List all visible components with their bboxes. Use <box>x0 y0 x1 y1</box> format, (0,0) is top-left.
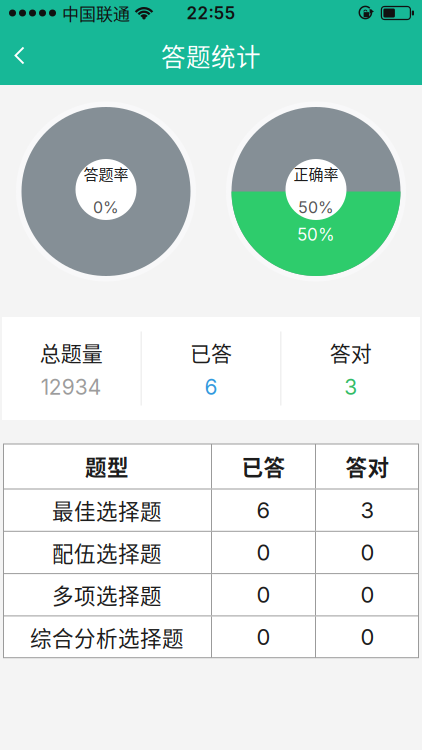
staticText: 0 <box>360 624 374 650</box>
staticText: 正确率 <box>293 163 338 184</box>
staticText: 0 <box>360 539 374 566</box>
staticText: 22:55 <box>186 3 235 23</box>
staticText: 12934 <box>41 374 102 400</box>
staticText: 3 <box>344 374 357 400</box>
staticText: 50% <box>298 198 334 217</box>
staticText: 题型 <box>85 451 129 482</box>
staticText: 答对 <box>345 451 389 482</box>
staticText: 0 <box>256 624 270 650</box>
staticText: 0 <box>360 581 374 608</box>
staticText: 已答 <box>241 451 285 482</box>
staticText: 配伍选择题 <box>52 537 162 568</box>
staticText: 0% <box>93 198 119 217</box>
staticText: 综合分析选择题 <box>30 621 184 653</box>
staticText: 50% <box>297 224 335 245</box>
staticText: 答对 <box>330 337 372 367</box>
staticText: 答题统计 <box>161 38 261 73</box>
staticText: 6 <box>204 374 217 400</box>
staticText: 3 <box>360 497 374 523</box>
button[interactable]: Back <box>8 35 38 75</box>
staticText: 总题量 <box>40 337 103 367</box>
staticText: 中国联通 <box>62 1 130 25</box>
staticText: 6 <box>256 497 270 523</box>
staticText: 答题率 <box>83 163 128 184</box>
staticText: 多项选择题 <box>52 579 162 610</box>
staticText: 0 <box>256 581 270 608</box>
staticText: 已答 <box>190 337 232 367</box>
staticText: 最佳选择题 <box>52 495 162 526</box>
staticText: 0 <box>256 539 270 566</box>
